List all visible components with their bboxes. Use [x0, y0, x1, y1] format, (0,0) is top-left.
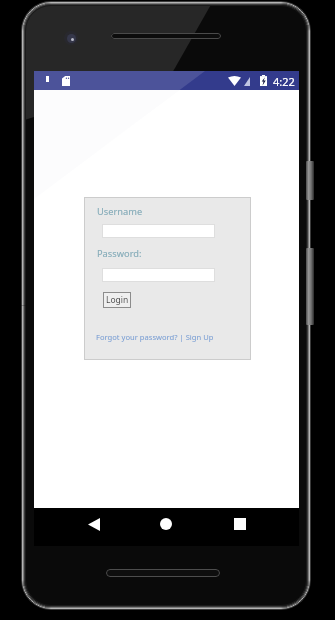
button[interactable]: Volume	[306, 248, 314, 325]
button[interactable]: Forgot your password? | Sign Up	[96, 332, 214, 342]
button[interactable]: Recent apps	[220, 508, 260, 540]
staticText: 4:22	[273, 74, 295, 89]
staticText: Username	[97, 205, 143, 218]
button[interactable]: Username input	[102, 224, 215, 238]
staticText: Login	[106, 294, 129, 306]
staticText: Password:	[97, 247, 142, 260]
button[interactable]: Login	[103, 292, 131, 308]
button[interactable]: Password input	[102, 268, 215, 282]
button[interactable]: Home	[146, 508, 186, 540]
button[interactable]: Back	[74, 508, 114, 540]
button[interactable]: Power	[306, 161, 314, 200]
